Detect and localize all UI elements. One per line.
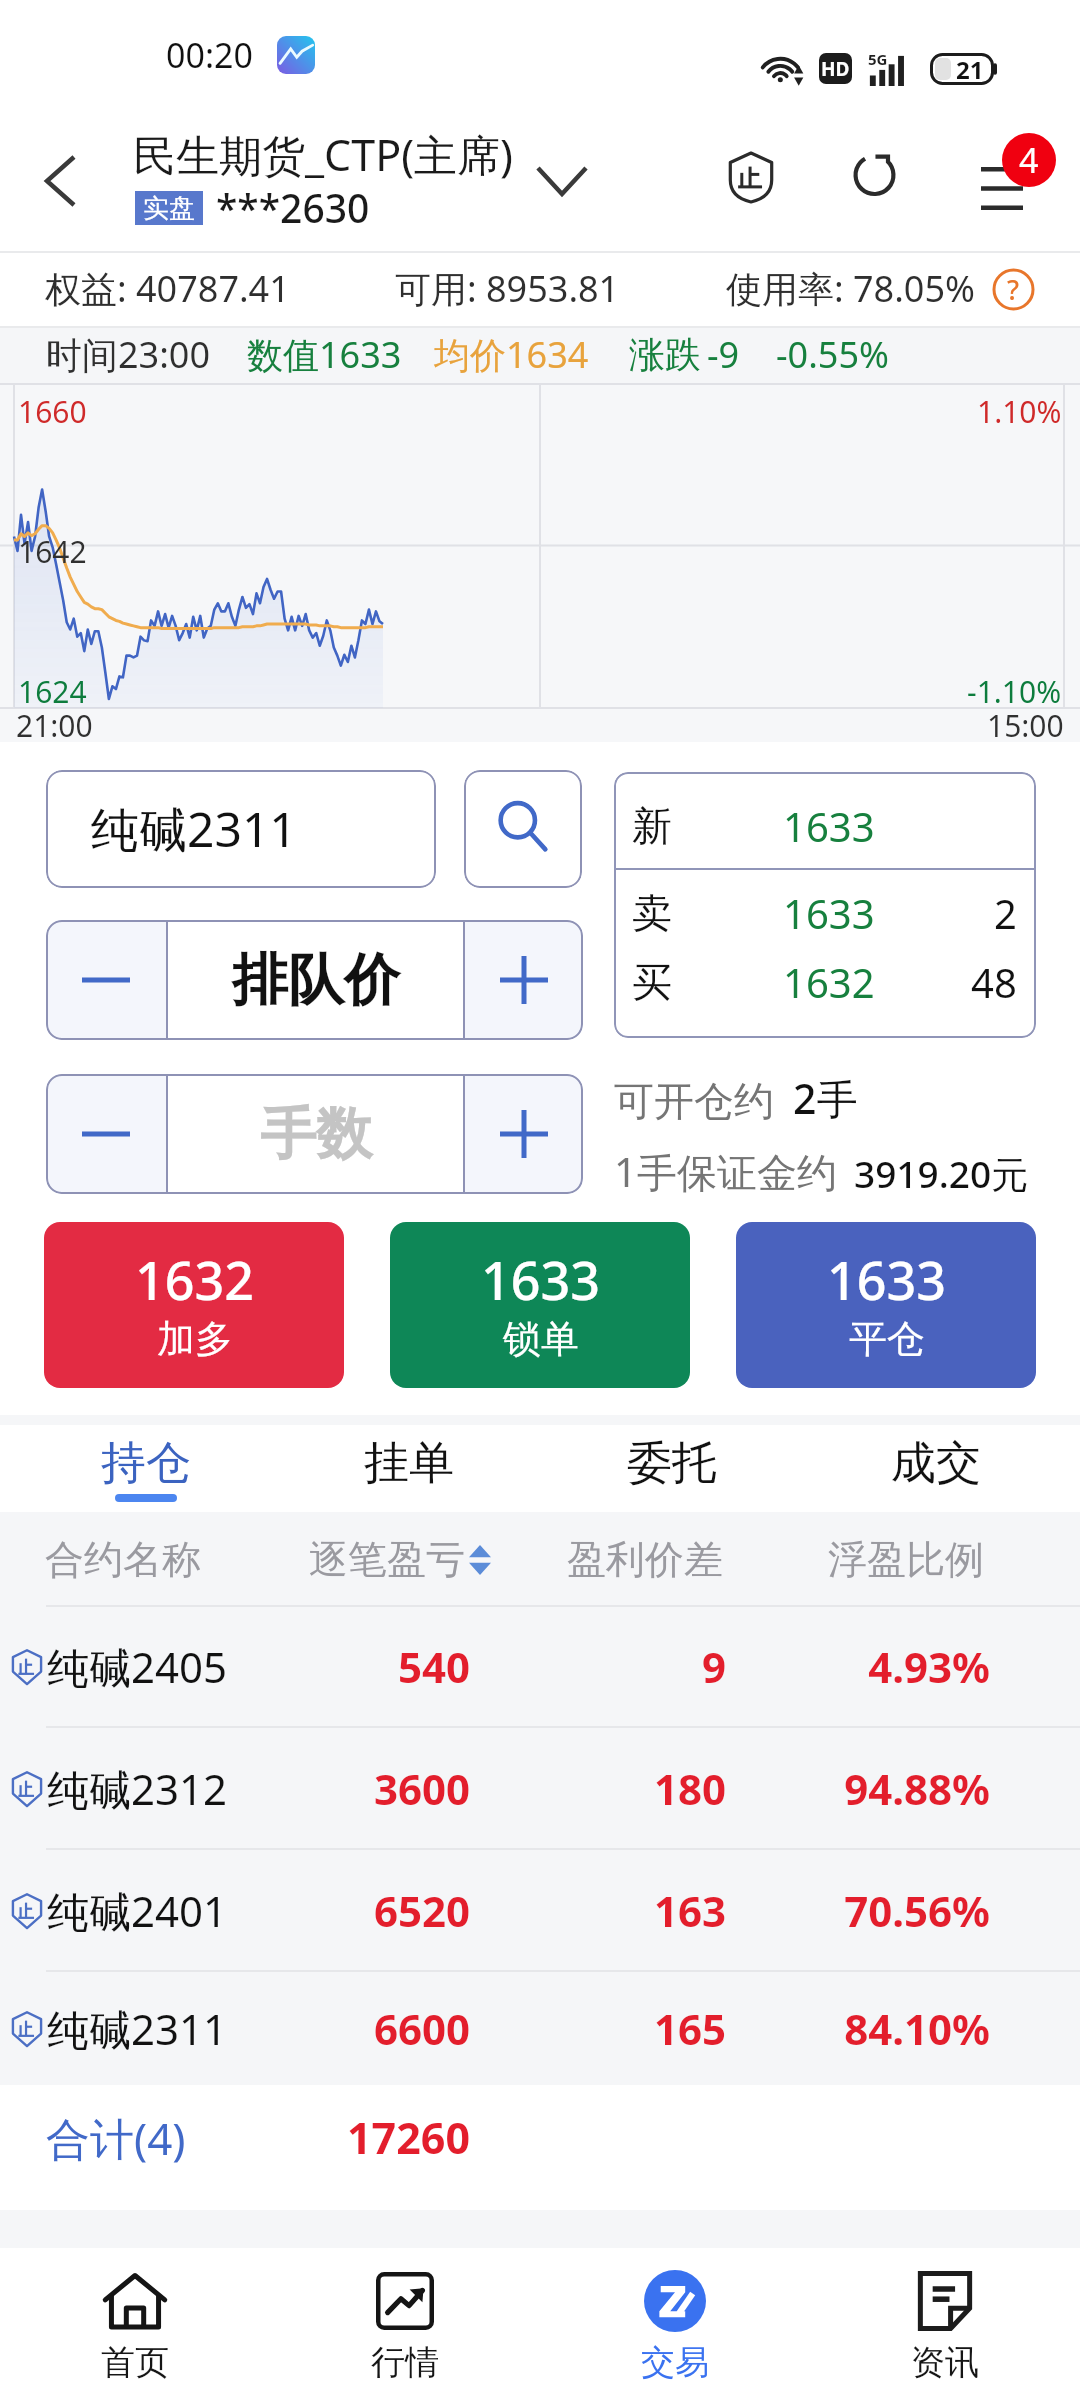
- staticText: 成交: [891, 1435, 981, 1492]
- staticText: 纯碱2312: [47, 1760, 228, 1817]
- button[interactable]: 纯碱2311: [0, 1972, 1080, 2085]
- staticText: 加多: [157, 1315, 233, 1363]
- button[interactable]: 减少: [46, 920, 166, 1040]
- staticText: 纯碱2311: [91, 796, 297, 862]
- staticText: 民生期货_CTP(主席): [133, 125, 513, 184]
- button[interactable]: 1632: [44, 1222, 344, 1388]
- staticText: 1624: [18, 671, 87, 712]
- staticText: 买: [632, 957, 672, 1007]
- staticText: 2手: [793, 1070, 858, 1126]
- staticText: 1手保证金约: [614, 1144, 837, 1199]
- button[interactable]: 行情: [270, 2248, 540, 2400]
- staticText: 70.56%: [726, 1882, 990, 1939]
- staticText: 48: [971, 955, 1017, 1009]
- button[interactable]: 资讯: [810, 2248, 1080, 2400]
- staticText: 逐笔盈亏: [309, 1535, 465, 1584]
- staticText: -0.55%: [776, 330, 889, 379]
- staticText: 权益: 40787.41: [45, 264, 290, 313]
- staticText: 1633: [827, 1244, 946, 1315]
- button[interactable]: 纯碱2405: [0, 1607, 1080, 1726]
- staticText: 1633: [783, 799, 875, 853]
- staticText: -9: [707, 330, 740, 379]
- staticText: 时间23:00: [46, 330, 211, 379]
- button[interactable]: 搜索: [464, 770, 582, 888]
- staticText: 手数: [260, 1099, 372, 1170]
- staticText: -1.10%: [967, 671, 1062, 712]
- staticText: 锁单: [503, 1315, 579, 1363]
- button[interactable]: 刷新: [819, 117, 929, 227]
- staticText: 3919.20元: [854, 1148, 1029, 1199]
- button[interactable]: 挂单: [277, 1425, 540, 1512]
- button[interactable]: 菜单: [960, 130, 1060, 240]
- staticText: 新: [632, 801, 672, 851]
- staticText: 合约名称: [45, 1535, 201, 1584]
- staticText: 6520: [296, 1882, 470, 1939]
- button[interactable]: 1633: [736, 1222, 1036, 1388]
- staticText: 交易: [641, 2341, 709, 2384]
- button[interactable]: 增加: [465, 920, 583, 1040]
- staticText: 1633: [783, 886, 875, 940]
- staticText: 180: [470, 1760, 726, 1817]
- staticText: 84.10%: [726, 2000, 990, 2057]
- staticText: 1.10%: [977, 391, 1062, 432]
- staticText: 浮盈比例: [828, 1535, 984, 1584]
- button[interactable]: 手数: [168, 1074, 463, 1194]
- staticText: ***2630: [216, 181, 370, 234]
- staticText: 5G: [868, 49, 888, 69]
- staticText: 资讯: [911, 2341, 979, 2384]
- staticText: HD: [821, 56, 850, 82]
- button[interactable]: 纯碱2312: [0, 1728, 1080, 1848]
- staticText: 1660: [18, 391, 87, 432]
- staticText: 2: [994, 886, 1017, 940]
- staticText: 3600: [296, 1760, 470, 1817]
- staticText: 行情: [371, 2341, 439, 2384]
- button[interactable]: 排队价: [168, 920, 463, 1040]
- staticText: 94.88%: [726, 1760, 990, 1817]
- staticText: 数值1633: [247, 330, 402, 379]
- staticText: 15:00: [987, 705, 1064, 742]
- staticText: 1632: [135, 1244, 254, 1315]
- staticText: 00:20: [166, 32, 253, 78]
- staticText: 纯碱2311: [47, 2000, 228, 2057]
- staticText: 委托: [627, 1435, 717, 1492]
- button[interactable]: 纯碱2311: [46, 770, 436, 888]
- staticText: 纯碱2405: [47, 1638, 228, 1695]
- staticText: 涨跌: [629, 332, 701, 377]
- button[interactable]: 帮助: [991, 267, 1035, 311]
- staticText: 4.93%: [726, 1638, 990, 1695]
- button[interactable]: 止盈止损: [696, 122, 806, 232]
- staticText: 1642: [18, 531, 87, 572]
- button[interactable]: 交易: [540, 2248, 810, 2400]
- staticText: 合计(4): [46, 2108, 293, 2168]
- staticText: 4: [1019, 137, 1039, 183]
- staticText: 9: [470, 1638, 726, 1695]
- button[interactable]: 切换账户: [512, 131, 612, 231]
- button[interactable]: 首页: [0, 2248, 270, 2400]
- staticText: 21:00: [16, 705, 93, 742]
- staticText: ?: [1007, 271, 1020, 308]
- staticText: 540: [296, 1638, 470, 1695]
- staticText: 1632: [783, 955, 875, 1009]
- staticText: 17260: [293, 2108, 470, 2167]
- button[interactable]: 成交: [804, 1425, 1068, 1512]
- staticText: 21: [956, 53, 984, 85]
- staticText: 使用率: 78.05%: [726, 264, 975, 313]
- staticText: 实盘: [143, 192, 195, 225]
- staticText: 挂单: [364, 1435, 454, 1492]
- button[interactable]: 持仓: [14, 1425, 277, 1512]
- button[interactable]: 减少: [46, 1074, 166, 1194]
- button[interactable]: Back: [0, 110, 120, 251]
- button[interactable]: 1633: [390, 1222, 690, 1388]
- staticText: 持仓: [101, 1435, 191, 1492]
- staticText: 可开仓约: [614, 1076, 774, 1126]
- staticText: 首页: [101, 2341, 169, 2384]
- staticText: 盈利价差: [567, 1535, 723, 1584]
- staticText: 卖: [632, 888, 672, 938]
- staticText: 纯碱2401: [47, 1882, 228, 1939]
- staticText: 排队价: [232, 945, 400, 1016]
- staticText: 平仓: [849, 1315, 925, 1363]
- staticText: 可用: 8953.81: [395, 264, 620, 313]
- button[interactable]: 增加: [465, 1074, 583, 1194]
- button[interactable]: 纯碱2401: [0, 1850, 1080, 1970]
- button[interactable]: 委托: [540, 1425, 804, 1512]
